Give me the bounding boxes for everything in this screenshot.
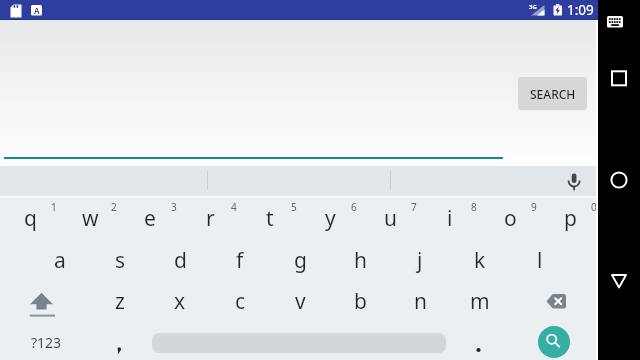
staticText: 6: [351, 200, 357, 213]
staticText: y: [325, 204, 336, 233]
staticText: 4: [231, 200, 237, 213]
staticText: x: [174, 287, 186, 316]
staticText: m: [470, 287, 490, 316]
button[interactable]: [599, 160, 639, 200]
staticText: 9: [531, 200, 537, 213]
button[interactable]: [560, 168, 588, 194]
staticText: u: [384, 204, 397, 233]
button[interactable]: g: [270, 240, 330, 281]
button[interactable]: y: [300, 198, 360, 239]
staticText: i: [447, 204, 453, 233]
button[interactable]: a: [30, 240, 90, 281]
button[interactable]: c: [210, 281, 270, 322]
button[interactable]: h: [330, 240, 390, 281]
button[interactable]: j: [390, 240, 450, 281]
staticText: g: [294, 246, 307, 275]
button[interactable]: ?123: [14, 322, 78, 360]
button[interactable]: l: [510, 240, 570, 281]
button[interactable]: r: [180, 198, 240, 239]
staticText: 2: [111, 200, 117, 213]
staticText: 3: [171, 200, 177, 213]
button[interactable]: p: [540, 198, 600, 239]
staticText: a: [54, 246, 66, 275]
staticText: 0: [591, 200, 597, 213]
staticText: w: [82, 204, 99, 233]
button[interactable]: x: [150, 281, 210, 322]
staticText: 1: [51, 200, 57, 213]
button[interactable]: b: [330, 281, 390, 322]
button[interactable]: m: [450, 281, 510, 322]
button[interactable]: w: [60, 198, 120, 239]
staticText: 7: [411, 200, 417, 213]
button[interactable]: d: [150, 240, 210, 281]
button[interactable]: q: [0, 198, 60, 239]
staticText: n: [414, 287, 427, 316]
staticText: s: [115, 246, 126, 275]
staticText: k: [474, 246, 486, 275]
staticText: ?123: [31, 333, 62, 352]
button[interactable]: [528, 278, 590, 319]
staticText: 5: [291, 200, 297, 213]
staticText: 8: [471, 200, 477, 213]
button[interactable]: u: [360, 198, 420, 239]
staticText: d: [174, 246, 187, 275]
staticText: b: [354, 287, 367, 316]
button[interactable]: f: [210, 240, 270, 281]
staticText: 1:09: [567, 1, 594, 19]
staticText: z: [115, 287, 125, 316]
button[interactable]: v: [270, 281, 330, 322]
staticText: c: [235, 287, 246, 316]
staticText: q: [24, 204, 37, 233]
button[interactable]: k: [450, 240, 510, 281]
staticText: SEARCH: [530, 86, 576, 102]
button[interactable]: [12, 278, 78, 319]
button[interactable]: z: [90, 281, 150, 322]
button[interactable]: t: [240, 198, 300, 239]
staticText: A: [34, 5, 40, 15]
staticText: f: [236, 246, 244, 275]
button[interactable]: [599, 58, 639, 98]
button[interactable]: s: [90, 240, 150, 281]
staticText: p: [564, 204, 577, 233]
button[interactable]: n: [390, 281, 450, 322]
staticText: 3G: [529, 3, 537, 11]
staticText: h: [354, 246, 367, 275]
button[interactable]: i: [420, 198, 480, 239]
staticText: r: [206, 204, 215, 233]
staticText: l: [537, 246, 543, 275]
button[interactable]: [599, 261, 639, 301]
button[interactable]: o: [480, 198, 540, 239]
staticText: o: [504, 204, 517, 233]
staticText: j: [417, 246, 423, 275]
button[interactable]: e: [120, 198, 180, 239]
staticText: v: [295, 287, 306, 316]
staticText: t: [266, 204, 274, 233]
button[interactable]: SEARCH: [518, 77, 587, 110]
button[interactable]: [538, 326, 570, 358]
staticText: e: [144, 204, 156, 233]
